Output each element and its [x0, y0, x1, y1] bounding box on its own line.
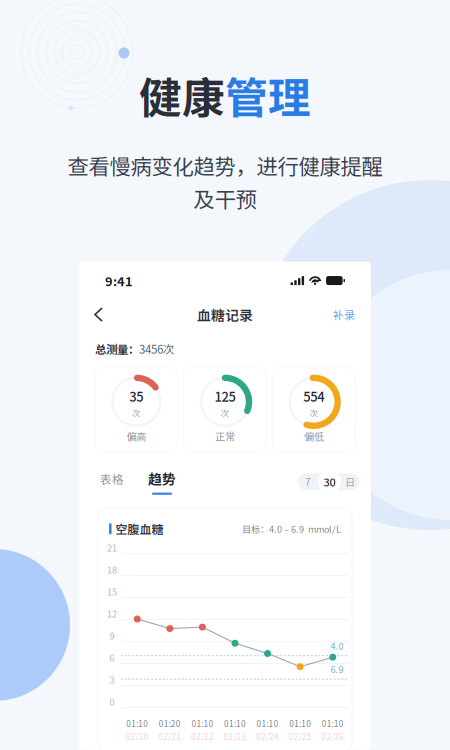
staticText: 偏低	[304, 429, 324, 443]
staticText: 3456次	[139, 341, 174, 357]
staticText: 30	[323, 474, 335, 489]
staticText: 偏高	[126, 429, 146, 443]
button[interactable]: 表格	[96, 468, 128, 495]
staticText: 02/22	[191, 730, 214, 742]
staticText: 总测量：	[95, 341, 139, 357]
staticText: 血糖记录	[197, 304, 253, 325]
button[interactable]: 日	[341, 473, 359, 490]
button[interactable]: 125	[184, 367, 266, 452]
staticText: 次	[132, 407, 141, 419]
staticText: 目标：4.0 – 6.9 mmol/L	[242, 522, 341, 535]
staticText: 6	[109, 651, 114, 664]
staticText: 正常	[215, 429, 235, 443]
button[interactable]: 554	[272, 367, 355, 452]
button[interactable]: 补录	[322, 300, 366, 329]
staticText: 35	[129, 387, 143, 406]
staticText: 4.0	[330, 639, 343, 652]
staticText: 7	[305, 474, 311, 489]
staticText: 18	[107, 563, 117, 576]
staticText: 01:10	[126, 717, 148, 729]
button[interactable]: 35	[95, 367, 178, 452]
staticText: 01:10	[257, 717, 279, 729]
staticText: 查看慢病变化趋势，进行健康提醒	[67, 150, 382, 181]
staticText: 日	[345, 474, 355, 489]
staticText: 15	[107, 585, 117, 598]
staticText: 02/23	[223, 730, 246, 742]
staticText: 空腹血糖	[116, 520, 164, 538]
staticText: 02/25	[289, 730, 312, 742]
staticText: 次	[309, 407, 318, 419]
staticText: 健康	[139, 64, 225, 126]
button[interactable]: 7	[298, 473, 318, 490]
staticText: 6.9	[330, 663, 343, 676]
staticText: 12	[107, 607, 117, 620]
button[interactable]: 30	[318, 470, 341, 493]
staticText: 次	[220, 407, 229, 419]
staticText: 554	[303, 387, 324, 406]
staticText: 02/26	[321, 730, 344, 742]
button[interactable]: 趋势	[144, 468, 180, 495]
staticText: 02/24	[256, 730, 279, 742]
staticText: 02/20	[126, 730, 149, 742]
staticText: 3	[109, 673, 114, 686]
staticText: 补录	[333, 307, 355, 322]
staticText: 02/21	[158, 730, 181, 742]
staticText: 0	[109, 695, 114, 708]
staticText: 01:10	[224, 717, 246, 729]
staticText: 01:10	[289, 717, 311, 729]
staticText: 表格	[100, 470, 124, 487]
staticText: 管理	[225, 64, 311, 126]
staticText: 01:20	[159, 717, 181, 729]
staticText: 及干预	[193, 183, 256, 214]
staticText: 01:10	[322, 717, 344, 729]
staticText: 趋势	[148, 468, 176, 489]
staticText: 01:10	[191, 717, 213, 729]
staticText: 125	[214, 387, 235, 406]
staticText: 21	[107, 541, 117, 554]
button[interactable]: Back	[84, 301, 113, 328]
staticText: 9	[109, 629, 114, 642]
staticText: 9:41	[105, 271, 133, 290]
